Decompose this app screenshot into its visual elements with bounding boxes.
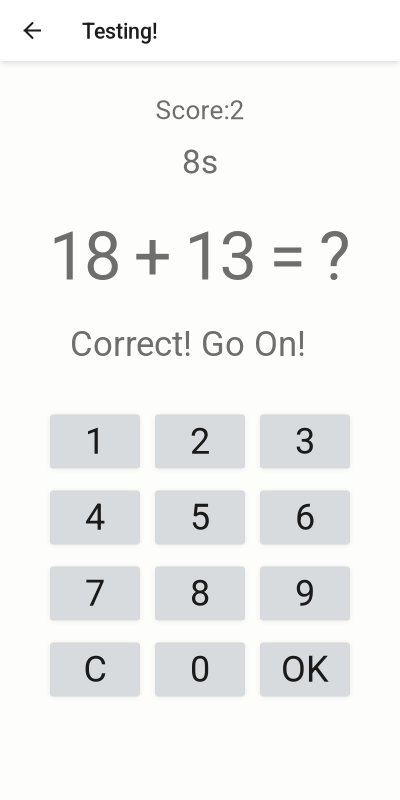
staticText: 6 [295, 496, 315, 538]
button[interactable]: 1 [50, 414, 140, 468]
button[interactable]: OK [260, 642, 350, 696]
staticText: 7 [85, 572, 105, 614]
staticText: OK [281, 648, 329, 690]
staticText: Score:2 [155, 95, 244, 126]
button[interactable]: 2 [155, 414, 245, 468]
staticText: 8s [182, 143, 218, 182]
button[interactable]: C [50, 642, 140, 696]
staticText: 4 [85, 496, 105, 538]
button[interactable]: 8 [155, 566, 245, 620]
staticText: Testing! [82, 19, 158, 44]
staticText: 1 [85, 420, 105, 462]
staticText: 9 [295, 572, 315, 614]
button[interactable]: 5 [155, 490, 245, 544]
button[interactable]: 6 [260, 490, 350, 544]
staticText: 2 [190, 420, 210, 462]
staticText: 5 [190, 496, 210, 538]
staticText: 0 [190, 648, 210, 690]
button[interactable]: 4 [50, 490, 140, 544]
staticText: Correct! Go On! [70, 324, 306, 364]
button[interactable]: Back [12, 0, 52, 61]
staticText: 8 [190, 572, 210, 614]
staticText: 18 + 13 = ? [49, 218, 351, 296]
staticText: 3 [295, 420, 315, 462]
button[interactable]: 3 [260, 414, 350, 468]
staticText: C [83, 648, 106, 690]
button[interactable]: 0 [155, 642, 245, 696]
button[interactable]: 7 [50, 566, 140, 620]
button[interactable]: 9 [260, 566, 350, 620]
